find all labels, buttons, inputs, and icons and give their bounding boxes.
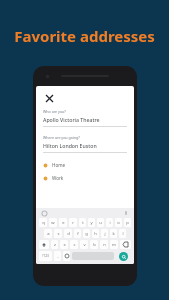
button[interactable]: s [54, 229, 62, 238]
staticText: w [51, 220, 55, 226]
button[interactable]: g [83, 229, 90, 238]
button[interactable]: Shift [39, 240, 49, 249]
button[interactable]: p [124, 218, 131, 227]
button[interactable]: y [88, 218, 95, 227]
button[interactable]: Language [63, 251, 70, 261]
button[interactable]: n [100, 240, 108, 249]
staticText: q [42, 220, 45, 226]
staticText: f [77, 231, 79, 237]
button[interactable]: v [80, 240, 88, 249]
button[interactable]: Work [43, 175, 127, 181]
button[interactable]: Backspace [120, 240, 131, 249]
staticText: g [85, 231, 88, 237]
staticText: v [83, 242, 86, 248]
staticText: Apollo Victoria Theatre [43, 116, 100, 123]
staticText: e [62, 220, 65, 226]
staticText: r [72, 220, 74, 226]
button[interactable]: ?123 [39, 251, 52, 261]
staticText: Hilton London Euston [43, 142, 97, 149]
staticText: , [57, 253, 59, 259]
staticText: Home [52, 162, 66, 168]
button[interactable]: u [97, 218, 104, 227]
button[interactable]: h [92, 229, 99, 238]
staticText: s [57, 231, 60, 237]
button[interactable]: , [54, 251, 61, 261]
staticText: p [126, 220, 129, 226]
button[interactable]: o [115, 218, 122, 227]
staticText: ?123 [42, 254, 49, 258]
button[interactable]: f [74, 229, 81, 238]
staticText: k [112, 231, 115, 237]
staticText: c [73, 242, 76, 248]
staticText: y [90, 220, 93, 226]
button[interactable]: More options [123, 210, 129, 216]
button[interactable]: m [110, 240, 118, 249]
staticText: u [99, 220, 102, 226]
staticText: h [94, 231, 97, 237]
button[interactable]: k [110, 229, 117, 238]
button[interactable]: z [51, 240, 58, 249]
button[interactable]: c [70, 240, 78, 249]
button[interactable]: t [79, 218, 86, 227]
button[interactable]: Close [43, 92, 55, 104]
button[interactable]: Search [119, 252, 128, 261]
button[interactable]: b [90, 240, 98, 249]
button[interactable]: x [60, 240, 68, 249]
staticText: l [122, 231, 124, 237]
button[interactable]: Who are you? [43, 109, 127, 127]
button[interactable]: r [69, 218, 77, 227]
staticText: m [112, 242, 116, 248]
staticText: Who are you? [43, 109, 66, 114]
staticText: i [109, 220, 111, 226]
button[interactable]: Home [43, 162, 127, 168]
staticText: b [93, 242, 96, 248]
staticText: Work [52, 175, 64, 181]
button[interactable]: e [59, 218, 67, 227]
button[interactable]: a [44, 229, 52, 238]
staticText: x [63, 242, 66, 248]
staticText: Favorite addresses [0, 26, 169, 46]
staticText: d [67, 231, 70, 237]
button[interactable]: q [39, 218, 47, 227]
button[interactable]: w [49, 218, 57, 227]
staticText: a [47, 231, 50, 237]
staticText: t [82, 220, 84, 226]
button[interactable]: l [119, 229, 126, 238]
button[interactable]: j [101, 229, 108, 238]
button[interactable]: d [64, 229, 72, 238]
staticText: j [104, 231, 106, 237]
button[interactable]: Where are you going? [43, 135, 127, 153]
staticText: n [103, 242, 106, 248]
staticText: o [117, 220, 120, 226]
staticText: Where are you going? [43, 135, 80, 140]
button[interactable]: Google [41, 210, 47, 216]
staticText: z [54, 242, 56, 248]
button[interactable]: i [106, 218, 113, 227]
